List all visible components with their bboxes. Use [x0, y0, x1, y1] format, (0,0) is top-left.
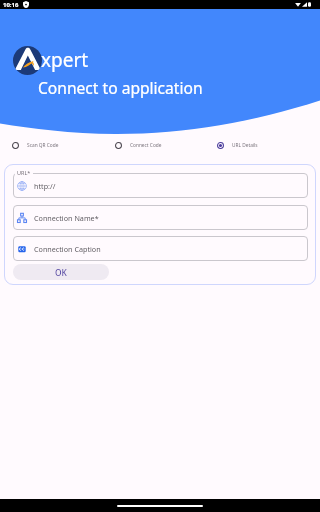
button[interactable]: http:// — [13, 173, 308, 198]
button[interactable]: URL Details — [217, 138, 258, 152]
staticText: http:// — [34, 181, 56, 191]
staticText: Connect Code — [130, 142, 162, 149]
staticText: Connection Name* — [34, 213, 99, 223]
button[interactable]: Connection Name* — [13, 205, 308, 230]
button[interactable]: OK — [13, 264, 109, 280]
button[interactable]: Connect Code — [115, 138, 162, 152]
staticText: Connect to application — [38, 77, 203, 98]
staticText: URL Details — [232, 142, 258, 149]
staticText: URL* — [17, 169, 31, 176]
staticText: xpert — [41, 47, 89, 73]
staticText: 10:16 — [3, 1, 19, 9]
staticText: Scan QR Code — [27, 142, 59, 149]
button[interactable]: Connection Caption — [13, 236, 308, 261]
staticText: OK — [55, 267, 67, 278]
staticText: Connection Caption — [34, 244, 101, 254]
button[interactable]: Scan QR Code — [12, 138, 59, 152]
